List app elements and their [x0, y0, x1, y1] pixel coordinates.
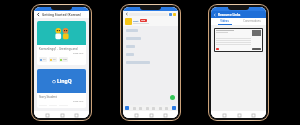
- button[interactable]: Navigation button: [60, 113, 64, 117]
- staticText: Story Student: [39, 95, 57, 99]
- staticText: Conversations: [243, 19, 261, 23]
- staticText: lingq.com: [73, 52, 84, 55]
- button[interactable]: Translate: [169, 13, 172, 16]
- staticText: 17: [43, 58, 46, 61]
- staticText: Chat: [133, 19, 139, 22]
- button[interactable]: Back: [125, 12, 129, 16]
- button[interactable]: Call: [170, 95, 175, 100]
- button[interactable]: Videos: [211, 18, 238, 25]
- button[interactable]: Back: [36, 12, 41, 17]
- button[interactable]: Koreanlingq1 - Greetings and Intro...: [37, 21, 86, 65]
- button[interactable]: 17: [39, 57, 47, 62]
- button[interactable]: Keyboard: [125, 106, 129, 110]
- staticText: LingQ: [57, 78, 72, 85]
- staticText: lingq.com: [73, 100, 84, 103]
- button[interactable]: Navigation button: [45, 113, 49, 117]
- button[interactable]: Navigation button: [222, 113, 226, 117]
- button[interactable]: More: [173, 13, 176, 16]
- staticText: Resource Links: [218, 13, 241, 17]
- staticText: Koreanlingq1 - Greetings and Intro...: [39, 47, 84, 51]
- button[interactable]: Navigation button: [163, 113, 167, 117]
- button[interactable]: Conversations: [238, 18, 266, 25]
- button[interactable]: [215, 29, 262, 51]
- button[interactable]: 12: [49, 57, 57, 62]
- staticText: LIVE: [141, 19, 146, 22]
- button[interactable]: Navigation button: [149, 113, 153, 117]
- staticText: Videos: [220, 19, 229, 23]
- staticText: 12: [53, 58, 56, 61]
- button[interactable]: Navigation button: [237, 113, 241, 117]
- button[interactable]: Navigation button: [74, 113, 78, 117]
- button[interactable]: Navigation button: [251, 113, 255, 117]
- staticText: 108: [63, 58, 67, 61]
- button[interactable]: LingQ: [37, 69, 86, 108]
- button[interactable]: Back: [213, 13, 217, 17]
- button[interactable]: 108: [59, 57, 68, 62]
- button[interactable]: Navigation button: [134, 113, 138, 117]
- staticText: Getting Started (Korean): [42, 13, 81, 17]
- button[interactable]: Send: [172, 106, 176, 110]
